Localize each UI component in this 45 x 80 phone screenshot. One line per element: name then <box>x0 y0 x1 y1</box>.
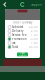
button[interactable]: Delivery <box>5 29 40 33</box>
button[interactable]: Tax <box>5 41 40 45</box>
staticText: 26.50 <box>29 45 38 49</box>
button[interactable]: Subtotal <box>5 25 40 29</box>
button[interactable]: Service fee <box>5 33 40 37</box>
staticText: 2.50 <box>31 29 38 33</box>
staticText: Tax <box>12 41 15 45</box>
staticText: Service fee <box>12 33 27 37</box>
button[interactable]: Promotion <box>5 37 40 41</box>
staticText: Subtotal <box>12 25 23 29</box>
button[interactable]: Back <box>2 0 8 8</box>
staticText: -3.00 <box>30 37 38 41</box>
staticText: Support <box>31 3 42 6</box>
staticText: 1.80 <box>31 41 38 45</box>
staticText: Promotion <box>12 37 27 41</box>
staticText: Delivery <box>12 29 23 33</box>
button[interactable]: Total <box>5 45 40 49</box>
button[interactable]: Place order <box>17 52 28 56</box>
staticText: 24.00 <box>29 25 38 29</box>
button[interactable]: Support <box>30 0 43 8</box>
staticText: Order summary <box>13 21 32 24</box>
staticText: Place order <box>18 51 26 58</box>
staticText: 1.20 <box>31 33 38 37</box>
staticText: Total <box>12 45 18 49</box>
